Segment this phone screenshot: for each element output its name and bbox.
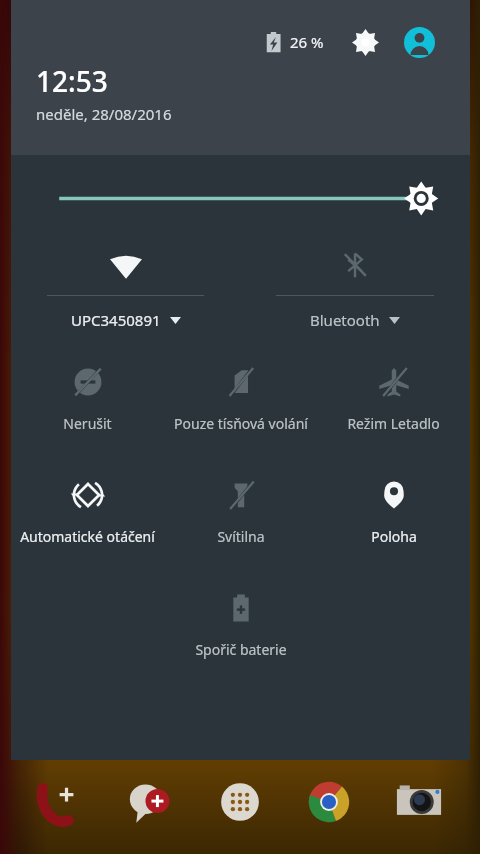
staticText: neděle, 28/08/2016	[36, 104, 172, 124]
button[interactable]: Bluetooth	[240, 243, 470, 330]
staticText: Pouze tísňová volání	[174, 414, 308, 433]
button[interactable]: Settings	[348, 25, 382, 59]
button[interactable]: Svítilna	[164, 475, 317, 546]
button[interactable]: Automatické otáčení	[11, 475, 164, 546]
staticText: Spořič baterie	[195, 640, 287, 659]
button[interactable]: Messages	[123, 774, 179, 830]
staticText: 26 %	[290, 32, 324, 52]
button[interactable]: UPC3450891	[11, 243, 240, 330]
staticText: 12:53	[36, 62, 108, 100]
button[interactable]: Spořič baterie	[164, 588, 317, 659]
staticText: Nerušit	[63, 414, 112, 433]
staticText: Režim Letadlo	[347, 414, 440, 433]
button[interactable]: Brightness	[11, 155, 470, 225]
button[interactable]: User profile	[402, 25, 436, 59]
staticText: Automatické otáčení	[20, 527, 155, 546]
staticText: UPC3450891	[71, 310, 161, 330]
button[interactable]: Camera	[391, 774, 447, 830]
staticText: Poloha	[371, 527, 417, 546]
button[interactable]: Pouze tísňová volání	[164, 362, 317, 433]
button[interactable]: Poloha	[317, 475, 470, 546]
button[interactable]: Chrome	[301, 774, 357, 830]
button[interactable]: Apps	[212, 774, 268, 830]
button[interactable]: Nerušit	[11, 362, 164, 433]
button[interactable]: Phone	[33, 774, 89, 830]
staticText: Svítilna	[217, 527, 265, 546]
button[interactable]: Režim Letadlo	[317, 362, 470, 433]
staticText: Bluetooth	[310, 310, 380, 330]
